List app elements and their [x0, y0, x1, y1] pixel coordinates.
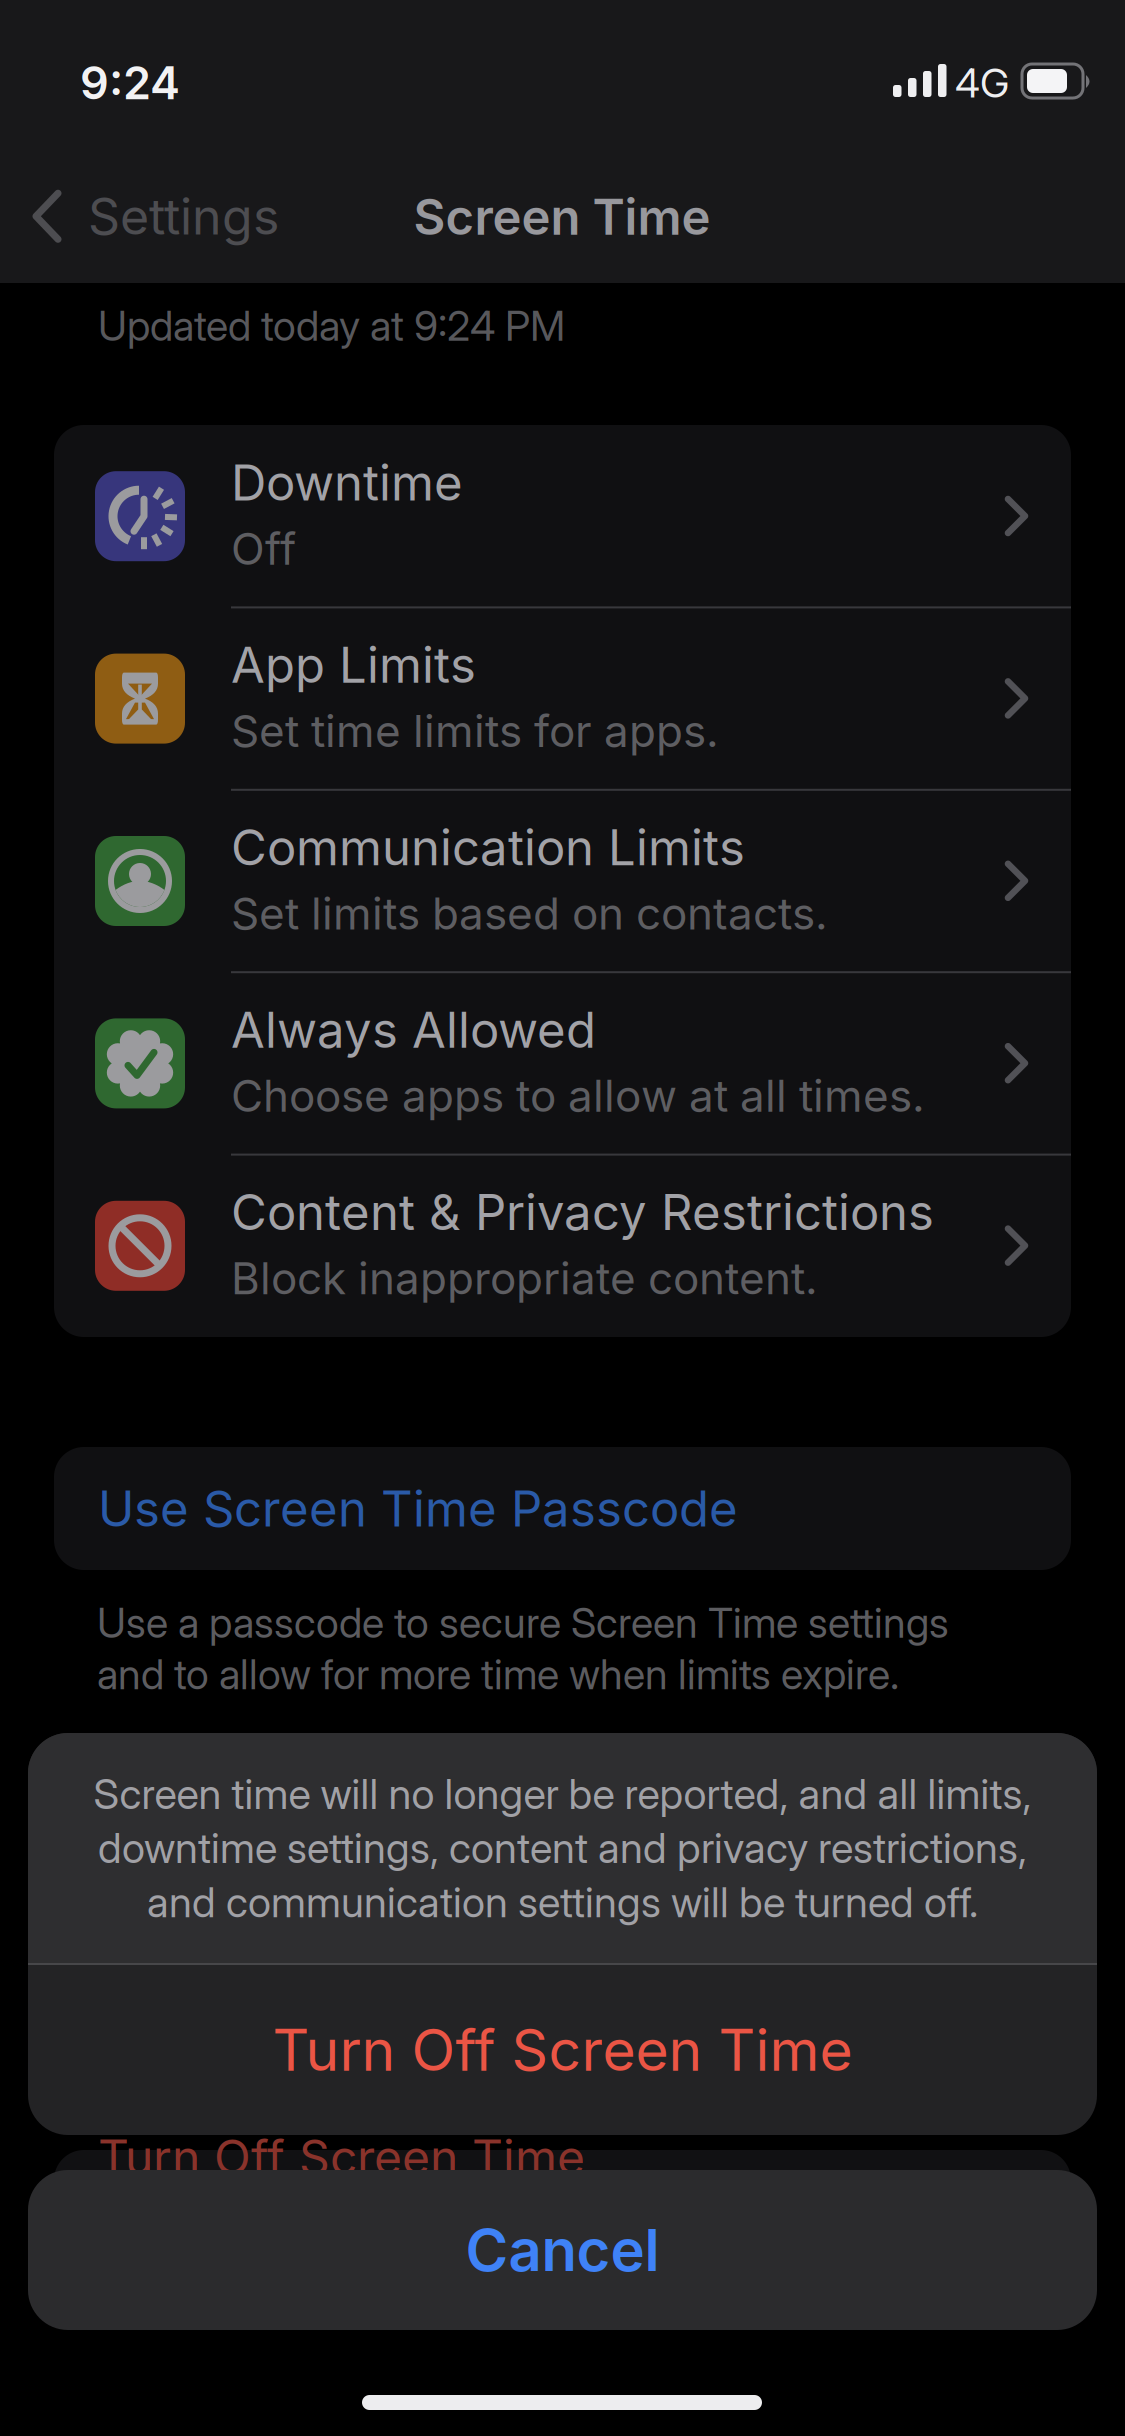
staticText: Updated today at 9:24 PM — [98, 301, 565, 351]
staticText: downtime settings, content and privacy r… — [98, 1823, 1027, 1873]
staticText: Screen time will no longer be reported, … — [93, 1769, 1031, 1819]
button[interactable]: Content & Privacy Restrictions — [54, 1155, 1071, 1337]
staticText: Screen Time — [413, 187, 710, 247]
button[interactable]: Use Screen Time Passcode — [54, 1447, 1071, 1570]
staticText: Use Screen Time Passcode — [98, 1479, 738, 1538]
button[interactable]: Downtime — [54, 425, 1071, 607]
staticText: Choose apps to allow at all times. — [231, 1069, 925, 1122]
staticText: Downtime — [231, 453, 463, 512]
staticText: Turn Off Screen Time — [272, 2015, 852, 2084]
staticText: 4G — [955, 59, 1009, 107]
staticText: Off — [231, 522, 296, 575]
staticText: and communication settings will be turne… — [147, 1877, 978, 1927]
staticText: App Limits — [231, 635, 476, 695]
button[interactable]: Always Allowed — [54, 972, 1071, 1155]
staticText: Turn Off Screen Time — [98, 2128, 585, 2186]
staticText: Set time limits for apps. — [231, 704, 719, 758]
staticText: Settings — [88, 186, 279, 246]
staticText: Always Allowed — [231, 1000, 596, 1059]
button[interactable]: Communication Limits — [54, 790, 1071, 972]
staticText: Cancel — [465, 2215, 659, 2285]
staticText: Content & Privacy Restrictions — [231, 1183, 934, 1242]
staticText: 9:24 — [80, 56, 180, 110]
button[interactable]: Settings — [32, 186, 279, 246]
button[interactable]: Cancel — [28, 2170, 1097, 2330]
staticText: Set limits based on contacts. — [231, 887, 828, 940]
button[interactable]: App Limits — [54, 607, 1071, 790]
staticText: Block inappropriate content. — [231, 1252, 818, 1305]
staticText: and to allow for more time when limits e… — [97, 1650, 899, 1699]
staticText: Communication Limits — [231, 818, 745, 877]
staticText: Use a passcode to secure Screen Time set… — [97, 1598, 949, 1648]
button[interactable]: Turn Off Screen Time — [28, 1965, 1097, 2135]
